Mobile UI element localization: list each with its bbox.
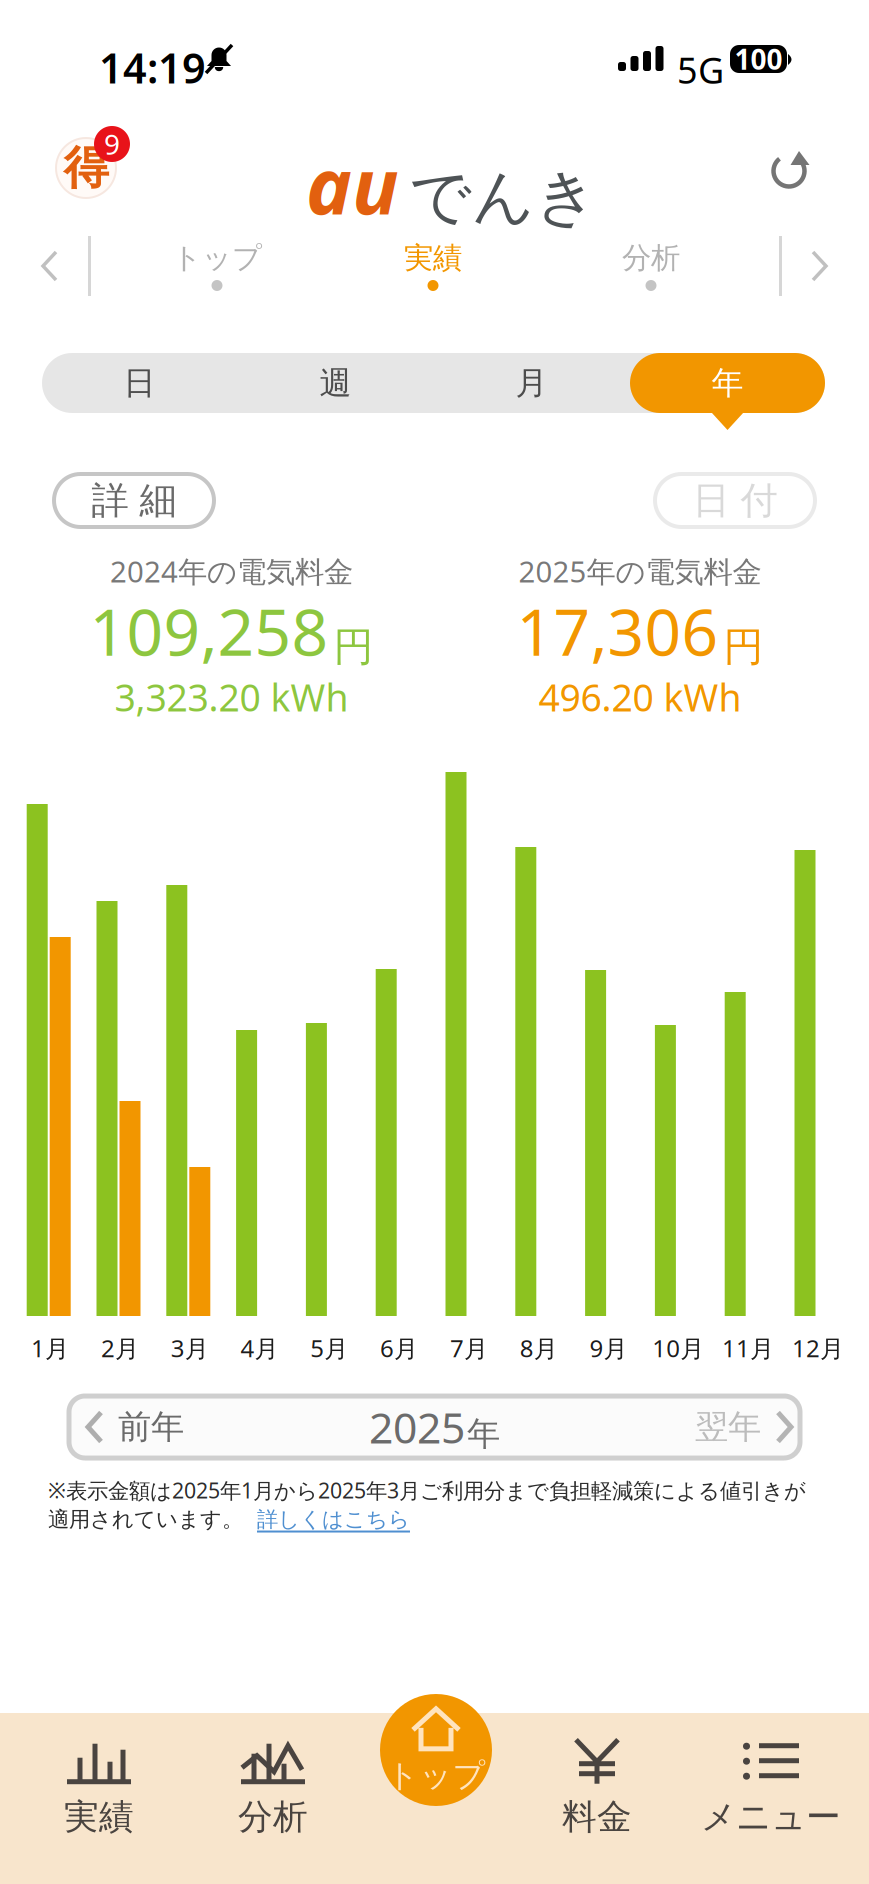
button[interactable]: 日 付 xyxy=(655,474,815,527)
staticText: トップ xyxy=(386,1756,485,1795)
button[interactable]: お得情報 xyxy=(56,130,134,204)
staticText: 3月 xyxy=(171,1332,209,1364)
staticText: メニュー xyxy=(701,1796,841,1838)
button[interactable]: 実績 xyxy=(353,232,513,306)
button[interactable]: 詳 細 xyxy=(54,474,214,527)
staticText: 496.20 kWh xyxy=(538,672,741,722)
staticText: 8月 xyxy=(520,1332,558,1364)
staticText: 109,258 xyxy=(89,588,328,673)
staticText: トップ xyxy=(172,240,262,276)
staticText: 5月 xyxy=(310,1332,348,1364)
staticText: 週 xyxy=(319,363,351,403)
staticText: 実績 xyxy=(404,240,462,276)
staticText: 適用されています。 xyxy=(48,1506,243,1532)
staticText: でんき xyxy=(409,159,598,235)
button[interactable]: 分析 xyxy=(571,232,731,306)
staticText: 分析 xyxy=(622,240,680,276)
staticText: 2025 xyxy=(369,1399,465,1455)
button[interactable]: トップ xyxy=(137,232,297,306)
button[interactable]: トップ xyxy=(380,1694,492,1806)
staticText: 得 xyxy=(63,140,108,196)
staticText: 翌年 xyxy=(695,1406,761,1447)
staticText: 17,306 xyxy=(516,588,718,673)
button[interactable]: 年 xyxy=(630,353,825,413)
button[interactable]: 実績 xyxy=(22,1727,176,1847)
button[interactable]: 日 xyxy=(42,353,237,413)
staticText: 12月 xyxy=(792,1332,844,1364)
button[interactable]: 分析 xyxy=(196,1727,350,1847)
staticText: 4月 xyxy=(240,1332,278,1364)
staticText: 5G xyxy=(677,46,724,94)
button[interactable]: メニュー xyxy=(694,1727,848,1847)
staticText: ※表示金額は2025年1月から2025年3月ご利用分まで負担軽減策による値引きが xyxy=(48,1476,806,1504)
staticText: au xyxy=(306,133,399,236)
button[interactable]: 再読み込み xyxy=(768,146,816,194)
staticText: 年 xyxy=(467,1413,500,1454)
staticText: 6月 xyxy=(380,1332,418,1364)
staticText: 1月 xyxy=(31,1332,69,1364)
button[interactable]: 翌年 xyxy=(695,1396,795,1458)
staticText: 2月 xyxy=(101,1332,139,1364)
staticText: 100 xyxy=(734,40,782,78)
button[interactable]: 月 xyxy=(434,353,629,413)
staticText: 10月 xyxy=(652,1332,704,1364)
staticText: 日 xyxy=(123,363,155,403)
button[interactable]: 週 xyxy=(238,353,433,413)
staticText: 14:19 xyxy=(99,40,206,95)
staticText: 7月 xyxy=(450,1332,488,1364)
staticText: 9 xyxy=(104,125,120,163)
staticText: 3,323.20 kWh xyxy=(114,672,348,722)
staticText: 円 xyxy=(723,622,763,671)
button[interactable]: 次へ xyxy=(800,238,840,294)
staticText: 円 xyxy=(333,622,373,671)
staticText: 詳 細 xyxy=(91,478,176,523)
staticText: 料金 xyxy=(562,1796,632,1838)
button[interactable]: 前へ xyxy=(30,238,70,294)
staticText: 日 付 xyxy=(692,478,777,523)
staticText: 2024年の電気料金 xyxy=(110,551,353,590)
staticText: 月 xyxy=(515,363,547,403)
button[interactable]: 詳しくはこちら xyxy=(257,1506,410,1532)
button[interactable]: 料金 xyxy=(520,1727,674,1847)
staticText: 9月 xyxy=(589,1332,627,1364)
button[interactable]: 前年 xyxy=(84,1396,184,1458)
staticText: 年 xyxy=(711,363,743,403)
staticText: 2025年の電気料金 xyxy=(518,551,761,590)
staticText: 11月 xyxy=(722,1332,774,1364)
staticText: 分析 xyxy=(238,1796,308,1838)
staticText: 前年 xyxy=(118,1406,184,1447)
staticText: 詳しくはこちら xyxy=(257,1506,410,1532)
staticText: 実績 xyxy=(64,1796,134,1838)
